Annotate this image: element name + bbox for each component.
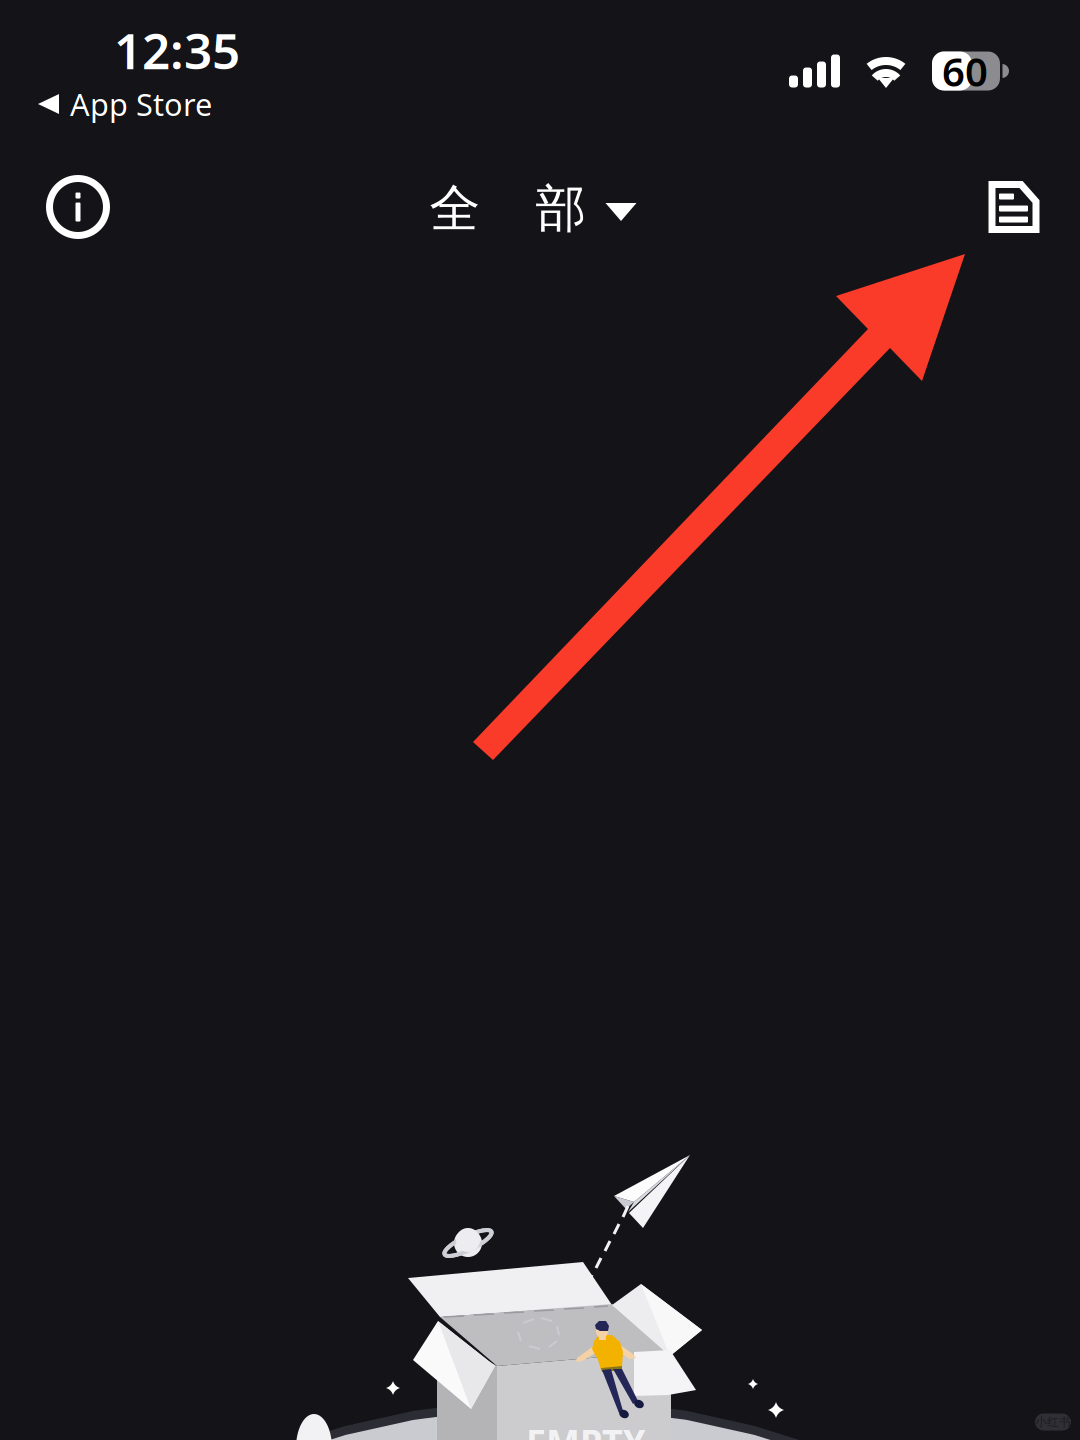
staticText: 12:35: [114, 17, 240, 83]
staticText: EMPTY: [526, 1418, 646, 1440]
button[interactable]: 全: [413, 162, 652, 256]
button[interactable]: Info: [28, 157, 128, 257]
staticText: App Store: [70, 84, 212, 124]
staticText: 部: [535, 178, 586, 240]
button[interactable]: Document list: [964, 157, 1064, 257]
staticText: 60: [942, 44, 988, 97]
staticText: 小红书: [1035, 1415, 1071, 1429]
button[interactable]: App Store: [24, 70, 226, 138]
staticText: 全: [429, 178, 480, 240]
